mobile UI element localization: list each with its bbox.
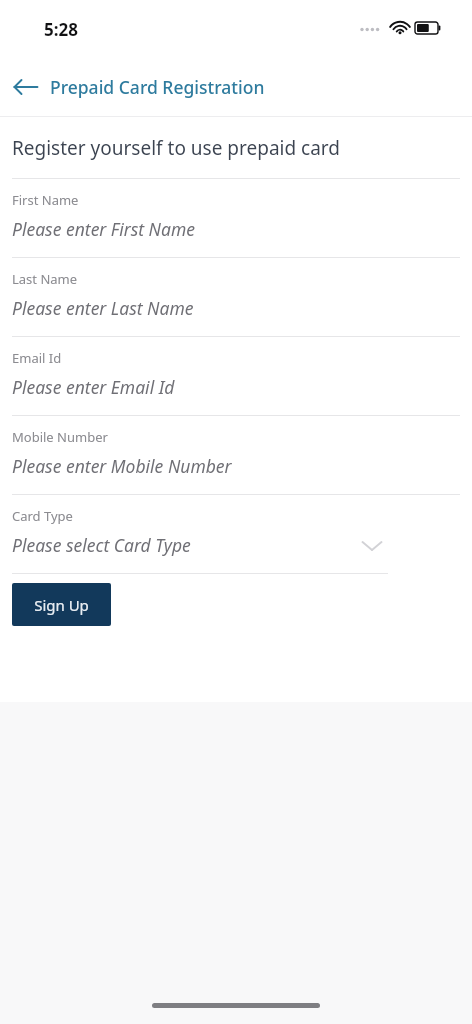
staticText: Card Type xyxy=(12,507,73,525)
button[interactable]: Email Id xyxy=(0,337,472,415)
staticText: First Name xyxy=(12,191,79,209)
staticText: Please enter Mobile Number xyxy=(12,454,232,478)
button[interactable]: Last Name xyxy=(0,258,472,336)
staticText: 5:28 xyxy=(44,18,78,41)
staticText: Last Name xyxy=(12,270,78,288)
button[interactable]: Back xyxy=(0,58,472,116)
button[interactable]: Sign Up xyxy=(12,583,111,626)
button[interactable]: Card Type xyxy=(0,495,472,573)
staticText: Sign Up xyxy=(34,595,89,615)
staticText: Mobile Number xyxy=(12,428,108,446)
staticText: Please enter Email Id xyxy=(12,375,175,399)
staticText: Please enter First Name xyxy=(12,217,195,241)
staticText: Prepaid Card Registration xyxy=(50,75,265,99)
staticText: Please select Card Type xyxy=(12,533,191,557)
staticText: Register yourself to use prepaid card xyxy=(12,135,341,161)
button[interactable]: Mobile Number xyxy=(0,416,472,494)
staticText: Email Id xyxy=(12,349,62,367)
staticText: Please enter Last Name xyxy=(12,296,194,320)
button[interactable]: First Name xyxy=(0,179,472,257)
